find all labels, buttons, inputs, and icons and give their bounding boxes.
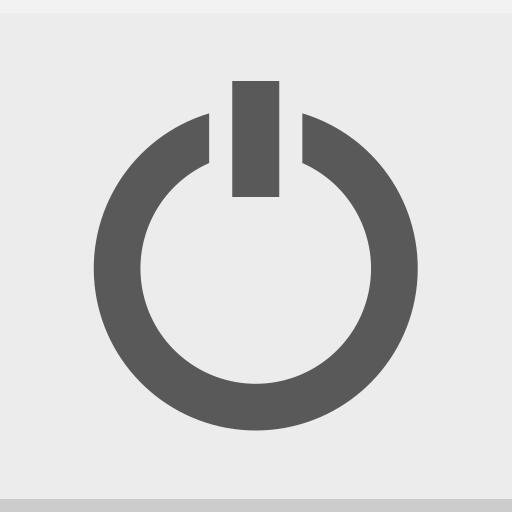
button[interactable]: Power [94,81,418,430]
